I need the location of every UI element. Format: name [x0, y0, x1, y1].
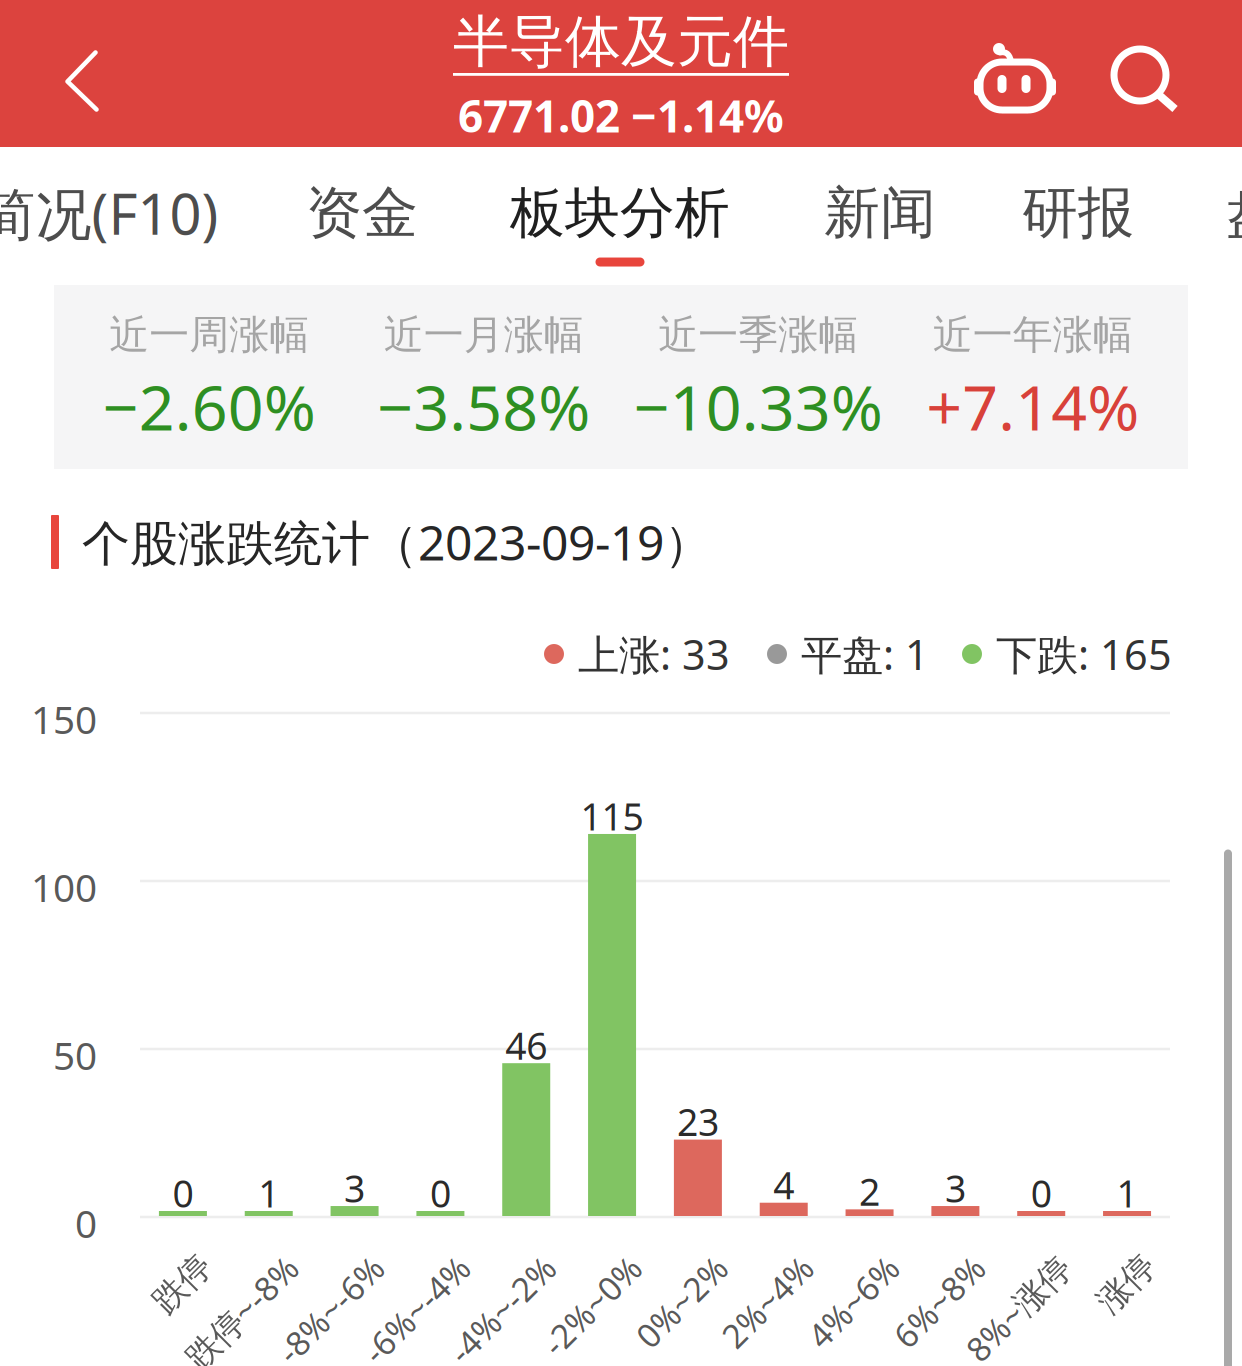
staticText: 新闻: [824, 179, 936, 247]
staticText: 下跌: 165: [996, 627, 1172, 681]
staticText: 研报: [1022, 179, 1134, 247]
staticText: 0: [75, 1197, 97, 1249]
staticText: 跌停: [125, 1246, 191, 1287]
button[interactable]: 盘口: [1226, 179, 1242, 247]
staticText: 6771.02 −1.14%: [458, 86, 784, 145]
staticText: 近一季涨幅: [658, 310, 858, 359]
staticText: -8%~-6%: [228, 1246, 363, 1290]
staticText: 23: [677, 1097, 719, 1146]
staticText: 0: [430, 1168, 451, 1218]
staticText: 跌停~-8%: [134, 1246, 277, 1290]
button[interactable]: Assistant: [975, 39, 1055, 119]
staticText: -4%~-2%: [399, 1246, 534, 1290]
staticText: −2.60%: [103, 364, 316, 448]
staticText: 0: [1031, 1168, 1052, 1218]
button[interactable]: 板块分析: [510, 179, 730, 246]
staticText: 2%~4%: [679, 1246, 792, 1290]
staticText: 150: [31, 693, 97, 745]
staticText: 盘口: [1226, 179, 1242, 247]
staticText: 6%~8%: [850, 1246, 963, 1290]
staticText: −3.58%: [377, 364, 590, 448]
staticText: 0: [172, 1168, 193, 1218]
staticText: -2%~0%: [496, 1246, 620, 1290]
button[interactable]: 资金: [306, 179, 418, 247]
staticText: 0%~2%: [593, 1246, 706, 1290]
staticText: +7.14%: [926, 364, 1139, 448]
staticText: 近一年涨幅: [933, 310, 1133, 359]
staticText: 简况(F10): [0, 176, 218, 250]
staticText: −10.33%: [634, 364, 883, 448]
staticText: 涨停: [1069, 1246, 1135, 1287]
button[interactable]: 研报: [1022, 179, 1134, 247]
staticText: 50: [53, 1029, 97, 1081]
staticText: 1: [258, 1168, 279, 1218]
button[interactable]: 新闻: [824, 179, 936, 247]
button[interactable]: Back: [67, 52, 96, 109]
staticText: 3: [945, 1163, 966, 1213]
staticText: 近一周涨幅: [109, 310, 309, 359]
staticText: 2: [859, 1167, 880, 1216]
staticText: 个股涨跌统计（2023-09-19）: [82, 510, 712, 574]
staticText: 平盘: 1: [801, 627, 929, 681]
staticText: 上涨: 33: [578, 627, 730, 681]
staticText: 资金: [306, 179, 418, 247]
button[interactable]: Search: [1111, 46, 1181, 116]
staticText: -6%~-4%: [313, 1246, 448, 1290]
staticText: 100: [31, 861, 97, 913]
staticText: 115: [581, 791, 644, 841]
button[interactable]: 简况(F10): [0, 176, 218, 250]
staticText: 半导体及元件: [453, 7, 789, 76]
staticText: 8%~涨停: [917, 1246, 1049, 1290]
staticText: 3: [344, 1163, 365, 1213]
staticText: 4: [773, 1160, 794, 1209]
staticText: 板块分析: [510, 179, 730, 246]
staticText: 1: [1116, 1168, 1137, 1218]
staticText: 近一月涨幅: [384, 310, 584, 359]
staticText: 46: [505, 1020, 547, 1070]
staticText: 4%~6%: [765, 1246, 878, 1290]
